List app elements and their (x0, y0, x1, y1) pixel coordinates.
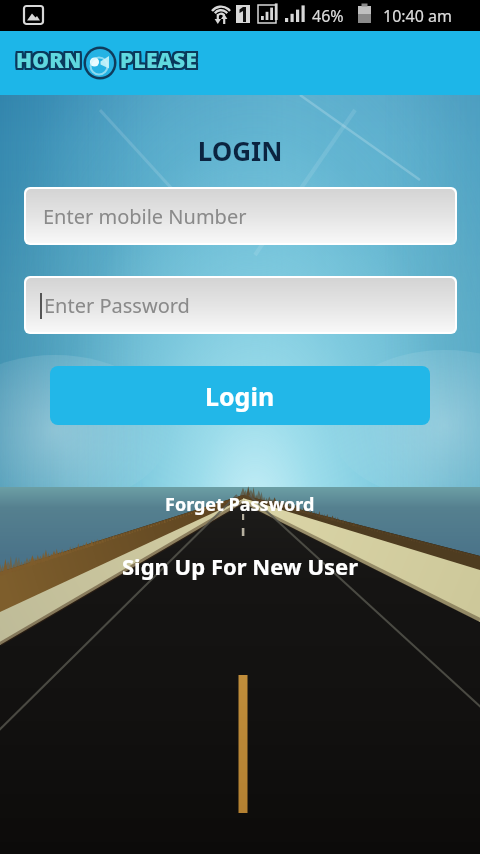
staticText: PLEASE (122, 44, 200, 73)
staticText: PLEASE (119, 45, 197, 74)
staticText: Enter Password (44, 292, 190, 319)
staticText: HORN (15, 46, 81, 75)
staticText: PLEASE (120, 44, 198, 73)
staticText: HORN (14, 47, 80, 76)
staticText: HORN (14, 48, 80, 77)
staticText: PLEASE (122, 45, 200, 74)
staticText: HORN (18, 45, 84, 74)
staticText: PLEASE (122, 47, 200, 76)
staticText: HORN (18, 44, 84, 73)
staticText: HORN (16, 48, 82, 77)
staticText: PLEASE (120, 45, 198, 74)
staticText: HORN (17, 48, 83, 77)
staticText: PLEASE (122, 48, 200, 77)
staticText: HORN (16, 45, 82, 74)
staticText: PLEASE (120, 47, 198, 76)
staticText: PLEASE (121, 45, 199, 74)
staticText: HORN (17, 45, 83, 74)
staticText: PLEASE (118, 44, 196, 73)
staticText: PLEASE (119, 44, 197, 73)
staticText: PLEASE (118, 48, 196, 77)
staticText: HORN (16, 47, 82, 76)
button[interactable]: Forget Password (0, 491, 480, 517)
staticText: PLEASE (118, 45, 196, 74)
staticText: HORN (17, 44, 83, 73)
button[interactable]: Enter mobile Number (26, 189, 455, 243)
staticText: HORN (18, 46, 84, 75)
staticText: HORN (15, 45, 81, 74)
staticText: Login (205, 379, 275, 413)
button[interactable]: Sign Up For New User (0, 550, 480, 582)
staticText: HORN (16, 46, 82, 75)
staticText: PLEASE (121, 48, 199, 77)
staticText: PLEASE (119, 47, 197, 76)
staticText: Forget Password (165, 492, 315, 517)
staticText: HORN (14, 45, 80, 74)
staticText: HORN (17, 47, 83, 76)
staticText: Sign Up For New User (122, 551, 359, 581)
staticText: HORN (14, 46, 80, 75)
staticText: PLEASE (119, 48, 197, 77)
staticText: HORN (17, 46, 83, 75)
button[interactable]: Enter Password (26, 278, 455, 332)
staticText: Enter mobile Number (43, 203, 247, 230)
staticText: HORN (18, 48, 84, 77)
staticText: HORN (18, 47, 84, 76)
staticText: PLEASE (122, 46, 200, 75)
staticText: PLEASE (121, 44, 199, 73)
staticText: PLEASE (118, 47, 196, 76)
staticText: PLEASE (120, 46, 198, 75)
staticText: PLEASE (121, 47, 199, 76)
staticText: HORN (14, 44, 80, 73)
button[interactable]: Login (50, 366, 430, 425)
staticText: HORN (16, 44, 82, 73)
staticText: PLEASE (121, 46, 199, 75)
staticText: PLEASE (118, 46, 196, 75)
staticText: 10:40 am (383, 5, 452, 27)
staticText: HORN (15, 47, 81, 76)
staticText: HORN (15, 48, 81, 77)
staticText: 46% (312, 5, 344, 27)
staticText: PLEASE (120, 48, 198, 77)
staticText: LOGIN (0, 133, 480, 168)
staticText: PLEASE (119, 46, 197, 75)
staticText: HORN (15, 44, 81, 73)
